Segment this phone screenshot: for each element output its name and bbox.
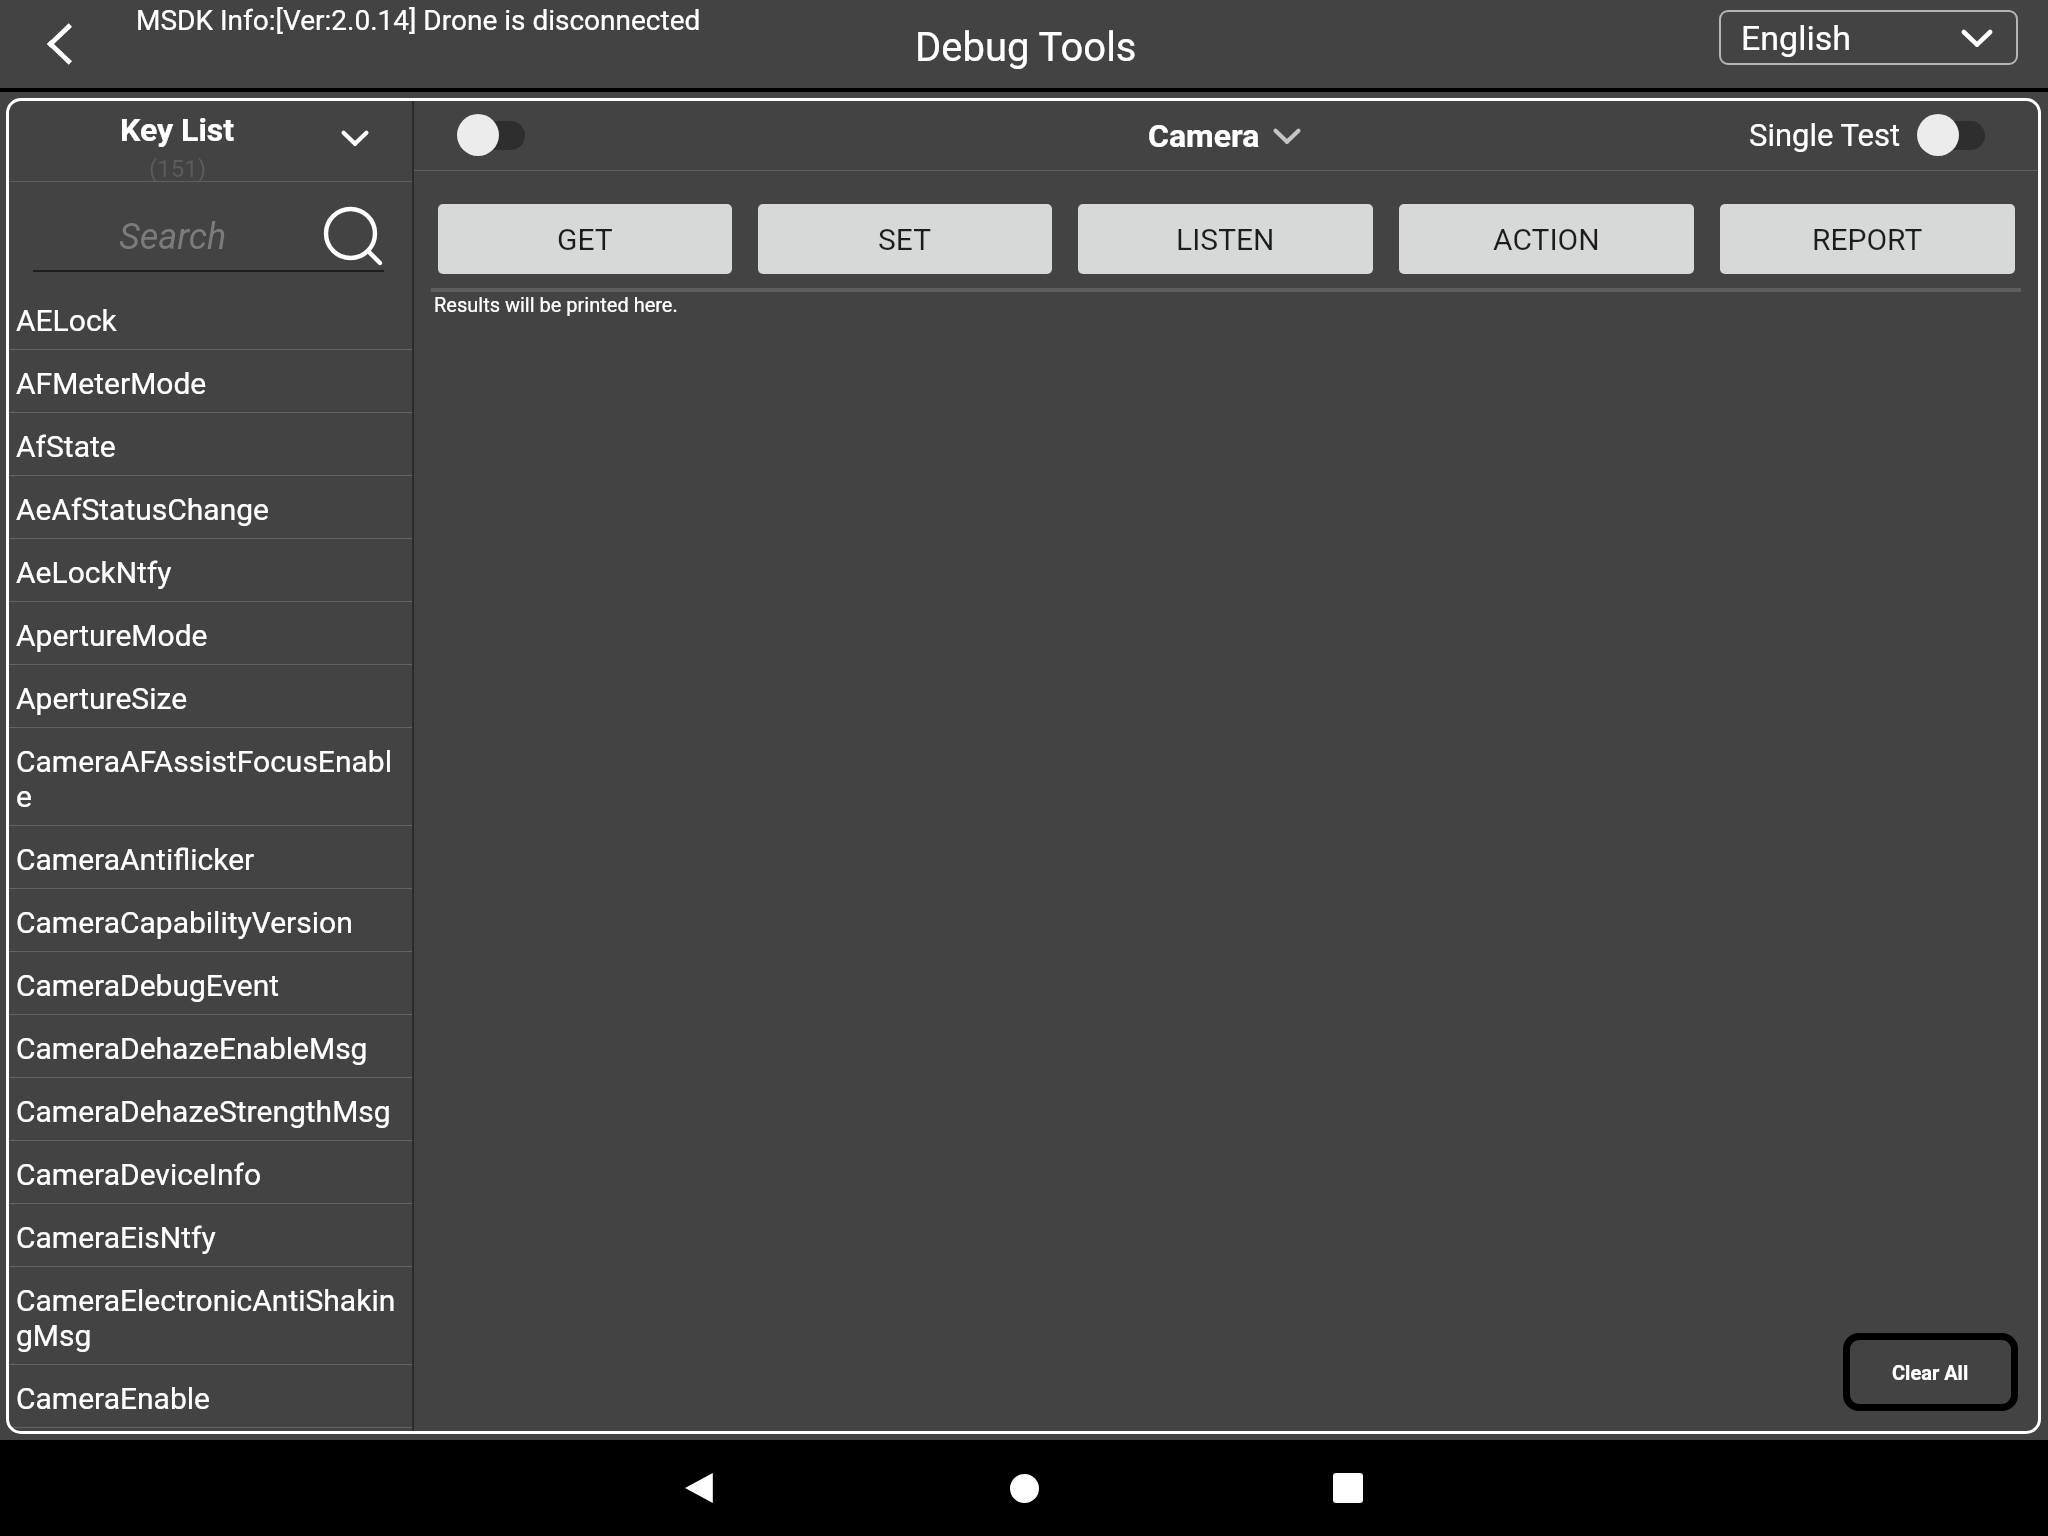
staticText: Debug Tools: [915, 24, 1137, 71]
button[interactable]: Back: [600, 1440, 800, 1536]
button[interactable]: Single Test: [1749, 113, 1985, 157]
button[interactable]: AELock: [8, 287, 412, 349]
button[interactable]: Search: [318, 188, 384, 254]
button[interactable]: ACTION: [1399, 204, 1694, 274]
staticText: ApertureMode: [16, 618, 208, 653]
button[interactable]: ApertureMode: [8, 602, 412, 664]
button[interactable]: AeLockNtfy: [8, 539, 412, 601]
button[interactable]: CameraDehazeEnableMsg: [8, 1015, 412, 1077]
staticText: Clear All: [1892, 1361, 1969, 1384]
button[interactable]: Camera: [1148, 117, 1300, 155]
staticText: Camera: [1148, 117, 1260, 155]
button[interactable]: AfState: [8, 413, 412, 475]
staticText: AELock: [16, 303, 117, 338]
staticText: CameraEisNtfy: [16, 1220, 216, 1255]
staticText: AeLockNtfy: [16, 555, 172, 590]
button[interactable]: CameraAFAssistFocusEnable: [8, 728, 412, 825]
staticText: Single Test: [1749, 117, 1901, 153]
button[interactable]: Home: [924, 1440, 1124, 1536]
staticText: (151): [149, 155, 207, 183]
staticText: CameraDebugEvent: [16, 968, 280, 1003]
staticText: Key List: [120, 111, 235, 149]
button[interactable]: LISTEN: [1078, 204, 1373, 274]
staticText: Search: [119, 216, 227, 258]
staticText: LISTEN: [1176, 222, 1275, 257]
button[interactable]: English: [1719, 10, 2018, 65]
button[interactable]: CameraDehazeStrengthMsg: [8, 1078, 412, 1140]
staticText: CameraDehazeEnableMsg: [16, 1031, 368, 1066]
button[interactable]: CameraDebugEvent: [8, 952, 412, 1014]
button[interactable]: Toggle: [1917, 113, 1985, 157]
staticText: CameraDehazeStrengthMsg: [16, 1094, 391, 1129]
staticText: CameraAFAssistFocusEnable: [16, 744, 400, 814]
button[interactable]: Toggle: [457, 113, 525, 157]
button[interactable]: CameraEisNtfy: [8, 1204, 412, 1266]
button[interactable]: Clear All: [1843, 1333, 2018, 1411]
button[interactable]: AFMeterMode: [8, 350, 412, 412]
button[interactable]: CameraAntiflicker: [8, 826, 412, 888]
staticText: ApertureSize: [16, 681, 188, 716]
staticText: AeAfStatusChange: [16, 492, 269, 527]
staticText: CameraEnable: [16, 1381, 210, 1416]
staticText: CameraCapabilityVersion: [16, 905, 353, 940]
button[interactable]: CameraCapabilityVersion: [8, 889, 412, 951]
staticText: ACTION: [1493, 222, 1600, 257]
staticText: REPORT: [1812, 222, 1923, 257]
button[interactable]: GET: [438, 204, 732, 274]
staticText: AfState: [16, 429, 116, 464]
button[interactable]: CameraDeviceInfo: [8, 1141, 412, 1203]
staticText: SET: [878, 222, 932, 257]
button[interactable]: REPORT: [1720, 204, 2015, 274]
staticText: CameraAntiflicker: [16, 842, 255, 877]
staticText: CameraDeviceInfo: [16, 1157, 262, 1192]
button[interactable]: CameraExposureMode: [8, 1428, 412, 1432]
button[interactable]: CameraElectronicAntiShakingMsg: [8, 1267, 412, 1364]
button[interactable]: SET: [758, 204, 1052, 274]
button[interactable]: Expand key list: [331, 114, 379, 162]
button[interactable]: ApertureSize: [8, 665, 412, 727]
button[interactable]: Recents: [1248, 1440, 1448, 1536]
staticText: GET: [557, 222, 613, 257]
button[interactable]: CameraEnable: [8, 1365, 412, 1427]
staticText: English: [1741, 18, 1962, 58]
button[interactable]: AeAfStatusChange: [8, 476, 412, 538]
button[interactable]: Back: [24, 8, 96, 80]
staticText: MSDK Info:[Ver:2.0.14] Drone is disconne…: [136, 4, 701, 37]
staticText: Results will be printed here.: [434, 293, 678, 316]
staticText: AFMeterMode: [16, 366, 207, 401]
staticText: CameraElectronicAntiShakingMsg: [16, 1283, 400, 1353]
